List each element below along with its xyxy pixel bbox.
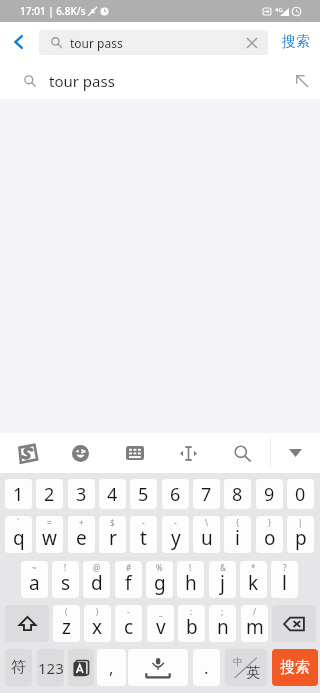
staticText: i — [235, 525, 240, 551]
button[interactable]: & — [209, 561, 236, 598]
button[interactable]: 搜索 — [272, 22, 319, 62]
button[interactable]: 1 — [5, 479, 32, 509]
button[interactable]: 123 — [37, 649, 64, 686]
staticText: 8 — [232, 482, 243, 507]
button[interactable]: : — [178, 605, 205, 642]
button[interactable]: ! — [52, 561, 79, 598]
button[interactable]: 0 — [287, 479, 314, 509]
button[interactable]: Search — [215, 433, 269, 473]
button[interactable]: / — [241, 605, 268, 642]
button[interactable]: Sogou input method — [0, 433, 54, 473]
staticText: 符 — [11, 658, 26, 677]
button[interactable]: Clear text — [236, 30, 268, 55]
button[interactable]: Back — [0, 22, 38, 62]
button[interactable]: - — [162, 516, 189, 553]
button[interactable]: { — [224, 516, 251, 553]
staticText: c — [124, 614, 134, 640]
button[interactable]: 6 — [162, 479, 189, 509]
button[interactable]: - — [115, 605, 142, 642]
button[interactable]: Backspace — [272, 605, 316, 642]
staticText: _ — [159, 606, 163, 617]
button[interactable]: } — [256, 516, 283, 553]
button[interactable]: ; — [209, 605, 236, 642]
button[interactable]: _ — [147, 605, 174, 642]
staticText: 中 — [233, 655, 243, 668]
button[interactable]: 搜索 — [272, 649, 318, 686]
button[interactable]: tour pass — [0, 62, 320, 99]
staticText: ! — [64, 562, 67, 573]
button[interactable]: Keyboard settings — [107, 433, 162, 473]
staticText: 0 — [295, 482, 306, 507]
staticText: f — [125, 570, 132, 596]
staticText: # — [126, 562, 132, 573]
staticText: 5 — [138, 482, 149, 507]
staticText: \ — [205, 517, 208, 528]
staticText: { — [236, 517, 240, 528]
button[interactable]: + — [68, 516, 95, 553]
button[interactable]: 8 — [224, 479, 251, 509]
button[interactable]: ) — [84, 605, 111, 642]
button[interactable]: Space — [128, 649, 188, 686]
staticText: 搜索 — [282, 33, 310, 51]
staticText: 123 — [38, 658, 64, 678]
button[interactable]: , — [97, 649, 126, 686]
staticText: - — [142, 517, 145, 528]
staticText: 1 — [13, 482, 24, 507]
staticText: b — [186, 614, 198, 640]
button[interactable]: ? — [271, 561, 298, 598]
button[interactable]: 4 — [99, 479, 126, 509]
button[interactable]: Move cursor — [162, 433, 215, 473]
button[interactable]: 5 — [130, 479, 157, 509]
staticText: q — [13, 525, 25, 551]
staticText: ` — [17, 517, 20, 528]
button[interactable]: = — [36, 516, 63, 553]
button[interactable]: 2 — [36, 479, 63, 509]
staticText: % — [156, 562, 163, 573]
staticText: 17:01 | 6.8K/s — [20, 4, 86, 18]
button[interactable]: Chinese / English — [225, 649, 267, 686]
staticText: k — [248, 570, 259, 596]
staticText: . — [204, 656, 209, 679]
button[interactable]: Use this suggestion — [284, 62, 320, 99]
staticText: | — [298, 517, 303, 528]
staticText: z — [62, 614, 71, 640]
staticText: l — [282, 570, 287, 596]
staticText: 9 — [264, 482, 275, 507]
button[interactable]: ( — [53, 605, 80, 642]
button[interactable]: 7 — [193, 479, 220, 509]
staticText: h — [185, 570, 197, 596]
button[interactable]: Emoji — [54, 433, 107, 473]
button[interactable]: . — [193, 649, 220, 686]
button[interactable]: Language — [68, 649, 94, 686]
staticText: m — [246, 614, 264, 640]
button[interactable]: | — [287, 516, 314, 553]
staticText: : — [190, 606, 193, 617]
button[interactable]: - — [130, 516, 157, 553]
button[interactable]: % — [146, 561, 173, 598]
button[interactable]: $ — [99, 516, 126, 553]
button[interactable]: 符 — [5, 649, 32, 686]
button[interactable]: Shift — [5, 605, 49, 642]
button[interactable]: @ — [83, 561, 110, 598]
staticText: s — [61, 570, 71, 596]
staticText: 搜索 — [280, 658, 310, 677]
button[interactable]: tour pass — [39, 30, 268, 55]
button[interactable]: * — [240, 561, 267, 598]
staticText: tour pass — [49, 71, 115, 91]
button[interactable]: ~ — [21, 561, 48, 598]
button[interactable]: ` — [5, 516, 32, 553]
staticText: w — [42, 525, 57, 551]
staticText: 4G — [275, 6, 283, 14]
staticText: / — [253, 606, 256, 617]
button[interactable]: 3 — [68, 479, 95, 509]
staticText: o — [264, 525, 276, 551]
button[interactable]: # — [115, 561, 142, 598]
button[interactable]: \ — [193, 516, 220, 553]
staticText: j — [220, 570, 225, 596]
button[interactable]: Hide keyboard — [270, 433, 320, 473]
button[interactable]: 9 — [256, 479, 283, 509]
staticText: ; — [221, 606, 224, 617]
staticText: 4 — [107, 482, 118, 507]
button[interactable]: ! — [177, 561, 204, 598]
staticText: @ — [93, 562, 101, 573]
